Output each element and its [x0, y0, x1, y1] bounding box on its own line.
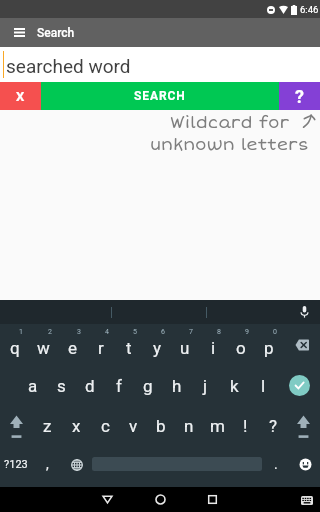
button[interactable]: 8: [199, 324, 227, 365]
staticText: u: [180, 338, 190, 358]
staticText: o: [236, 338, 246, 358]
button[interactable]: 1: [0, 324, 29, 365]
staticText: X: [16, 89, 25, 104]
button[interactable]: Space: [92, 446, 262, 487]
staticText: 0: [273, 328, 277, 336]
button[interactable]: b: [147, 406, 175, 446]
button[interactable]: x: [62, 406, 91, 446]
staticText: p: [264, 338, 274, 358]
staticText: Search: [37, 26, 75, 40]
staticText: i: [211, 338, 216, 358]
staticText: s: [57, 376, 66, 396]
staticText: SEARCH: [134, 89, 186, 103]
button[interactable]: Voice input: [297, 305, 311, 319]
button[interactable]: 4: [87, 324, 115, 365]
staticText: 3: [77, 328, 81, 336]
button[interactable]: Hide keyboard: [95, 487, 120, 512]
staticText: x: [72, 416, 81, 436]
staticText: ,: [46, 456, 49, 472]
button[interactable]: 9: [227, 324, 255, 365]
button[interactable]: SEARCH: [41, 82, 279, 110]
staticText: ?: [269, 416, 278, 436]
staticText: ?: [295, 86, 304, 107]
button[interactable]: d: [75, 365, 104, 406]
staticText: y: [153, 338, 162, 358]
staticText: f: [116, 376, 122, 396]
staticText: ?123: [4, 458, 28, 471]
button[interactable]: 3: [58, 324, 87, 365]
staticText: 4: [105, 328, 109, 336]
staticText: e: [68, 338, 78, 358]
staticText: j: [203, 376, 208, 396]
staticText: 6:46: [300, 4, 319, 15]
button[interactable]: Switch keyboard: [299, 492, 315, 508]
button[interactable]: ,: [32, 446, 62, 487]
staticText: 7: [189, 328, 193, 336]
button[interactable]: !: [231, 406, 259, 446]
button[interactable]: X: [0, 82, 41, 110]
staticText: a: [28, 376, 38, 396]
button[interactable]: m: [203, 406, 231, 446]
staticText: 9: [245, 328, 249, 336]
staticText: c: [101, 416, 110, 436]
staticText: q: [10, 338, 20, 358]
button[interactable]: Home: [148, 487, 173, 512]
button[interactable]: Delete: [283, 324, 320, 365]
button[interactable]: s: [47, 365, 75, 406]
staticText: k: [230, 376, 239, 396]
button[interactable]: 7: [171, 324, 199, 365]
staticText: l: [261, 376, 266, 396]
staticText: t: [126, 338, 132, 358]
button[interactable]: ?: [259, 406, 287, 446]
staticText: 1: [19, 328, 23, 336]
staticText: 2: [48, 328, 52, 336]
button[interactable]: c: [91, 406, 119, 446]
button[interactable]: 5: [115, 324, 143, 365]
staticText: 8: [217, 328, 221, 336]
button[interactable]: Change language: [62, 446, 92, 487]
staticText: !: [243, 416, 248, 436]
staticText: g: [143, 376, 153, 396]
staticText: d: [85, 376, 95, 396]
button[interactable]: a: [19, 365, 47, 406]
button[interactable]: 0: [255, 324, 283, 365]
staticText: z: [43, 416, 52, 436]
button[interactable]: 2: [29, 324, 58, 365]
staticText: v: [129, 416, 138, 436]
button[interactable]: ?: [279, 82, 320, 110]
staticText: 6: [161, 328, 165, 336]
staticText: w: [37, 338, 50, 358]
staticText: Wildcard for: [170, 112, 289, 133]
staticText: .: [274, 456, 278, 472]
button[interactable]: l: [249, 365, 278, 406]
button[interactable]: Enter: [278, 365, 320, 406]
button[interactable]: j: [191, 365, 220, 406]
button[interactable]: n: [175, 406, 203, 446]
button[interactable]: .: [262, 446, 290, 487]
staticText: 5: [133, 328, 137, 336]
staticText: unknown letters: [150, 134, 309, 155]
button[interactable]: f: [104, 365, 133, 406]
button[interactable]: z: [33, 406, 62, 446]
button[interactable]: 6: [143, 324, 171, 365]
button[interactable]: ?123: [0, 446, 32, 487]
staticText: n: [184, 416, 194, 436]
button[interactable]: h: [162, 365, 191, 406]
button[interactable]: Emoji: [290, 446, 320, 487]
button[interactable]: Shift: [0, 406, 33, 446]
button[interactable]: g: [133, 365, 162, 406]
button[interactable]: v: [119, 406, 147, 446]
button[interactable]: Recent apps: [200, 487, 225, 512]
staticText: b: [156, 416, 166, 436]
button[interactable]: Open navigation menu: [0, 18, 37, 47]
staticText: h: [172, 376, 182, 396]
button[interactable]: k: [220, 365, 249, 406]
staticText: r: [98, 338, 104, 358]
staticText: m: [210, 416, 225, 436]
staticText: searched word: [6, 55, 131, 77]
button[interactable]: Shift: [287, 406, 320, 446]
